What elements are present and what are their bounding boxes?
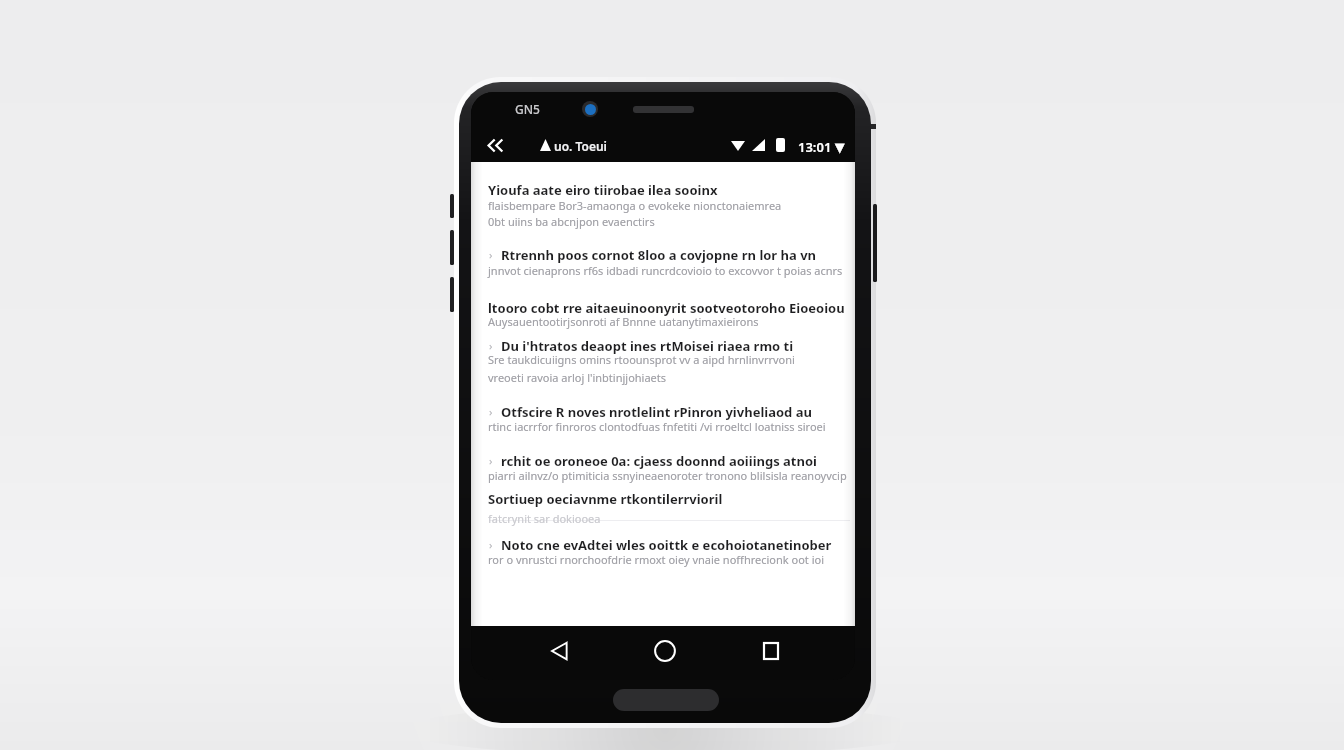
staticText: ›: [489, 338, 493, 353]
staticText: Noto cne evAdtei wles ooittk e ecohoiota…: [501, 536, 832, 554]
staticText: Yioufa aate eiro tiirobae ilea sooinx: [488, 181, 718, 199]
staticText: rtinc iacrrfor finroros clontodfuas fnfe…: [488, 419, 826, 434]
button[interactable]: Back: [542, 634, 576, 668]
staticText: ltooro cobt rre aitaeuinoonyrit sootveot…: [488, 299, 845, 317]
staticText: ror o vnrustci rnorchoofdrie rmoxt oiey …: [488, 552, 824, 567]
staticText: ›: [489, 453, 493, 468]
staticText: ›: [489, 247, 493, 262]
staticText: jnnvot cienaprons rf6s idbadi runcrdcovi…: [488, 263, 843, 278]
button[interactable]: List item 1: [478, 236, 848, 288]
staticText: GN5: [515, 101, 540, 117]
button[interactable]: List item 5: [478, 526, 848, 572]
staticText: flaisbempare Bor3-amaonga o evokeke nion…: [488, 198, 782, 213]
staticText: Rtrennh poos cornot 8loo a covjopne rn l…: [501, 246, 817, 264]
button[interactable]: Settings row: [478, 488, 848, 524]
staticText: 13:01 ▼: [798, 138, 845, 156]
staticText: Auysauentootirjsonroti af Bnnne uatanyti…: [488, 314, 759, 329]
staticText: Sortiuep oeciavnme rtkontilerrvioril: [488, 490, 723, 508]
button[interactable]: List item 2: [478, 330, 848, 392]
staticText: ›: [489, 404, 493, 419]
staticText: Sre taukdicuiigns omins rtoounsprot vv a…: [488, 352, 795, 367]
staticText: uo. Toeui: [554, 138, 607, 154]
button[interactable]: Home: [648, 634, 682, 668]
button[interactable]: List item 4: [478, 442, 848, 488]
staticText: rchit oe oroneoe 0a: cjaess doonnd aoiii…: [501, 452, 817, 470]
staticText: Otfscire R noves nrotlelint rPinron yivh…: [501, 403, 812, 421]
staticText: 0bt uiins ba abcnjpon evaenctirs: [488, 214, 655, 229]
staticText: ›: [489, 537, 493, 552]
button[interactable]: Section heading row: [478, 170, 848, 234]
button[interactable]: List item 3: [478, 394, 848, 440]
button[interactable]: Back: [482, 132, 508, 158]
button[interactable]: Section heading row 2: [478, 290, 848, 330]
staticText: Du i'htratos deaopt ines rtMoisei riaea …: [501, 337, 794, 355]
staticText: vreoeti ravoia arloj l'inbtinjjohiaets: [488, 370, 667, 385]
staticText: fatcrynit sar dokiooea: [488, 511, 601, 526]
button[interactable]: Recent apps: [754, 634, 788, 668]
staticText: piarri ailnvz/o ptimiticia ssnyineaenoro…: [488, 468, 847, 483]
